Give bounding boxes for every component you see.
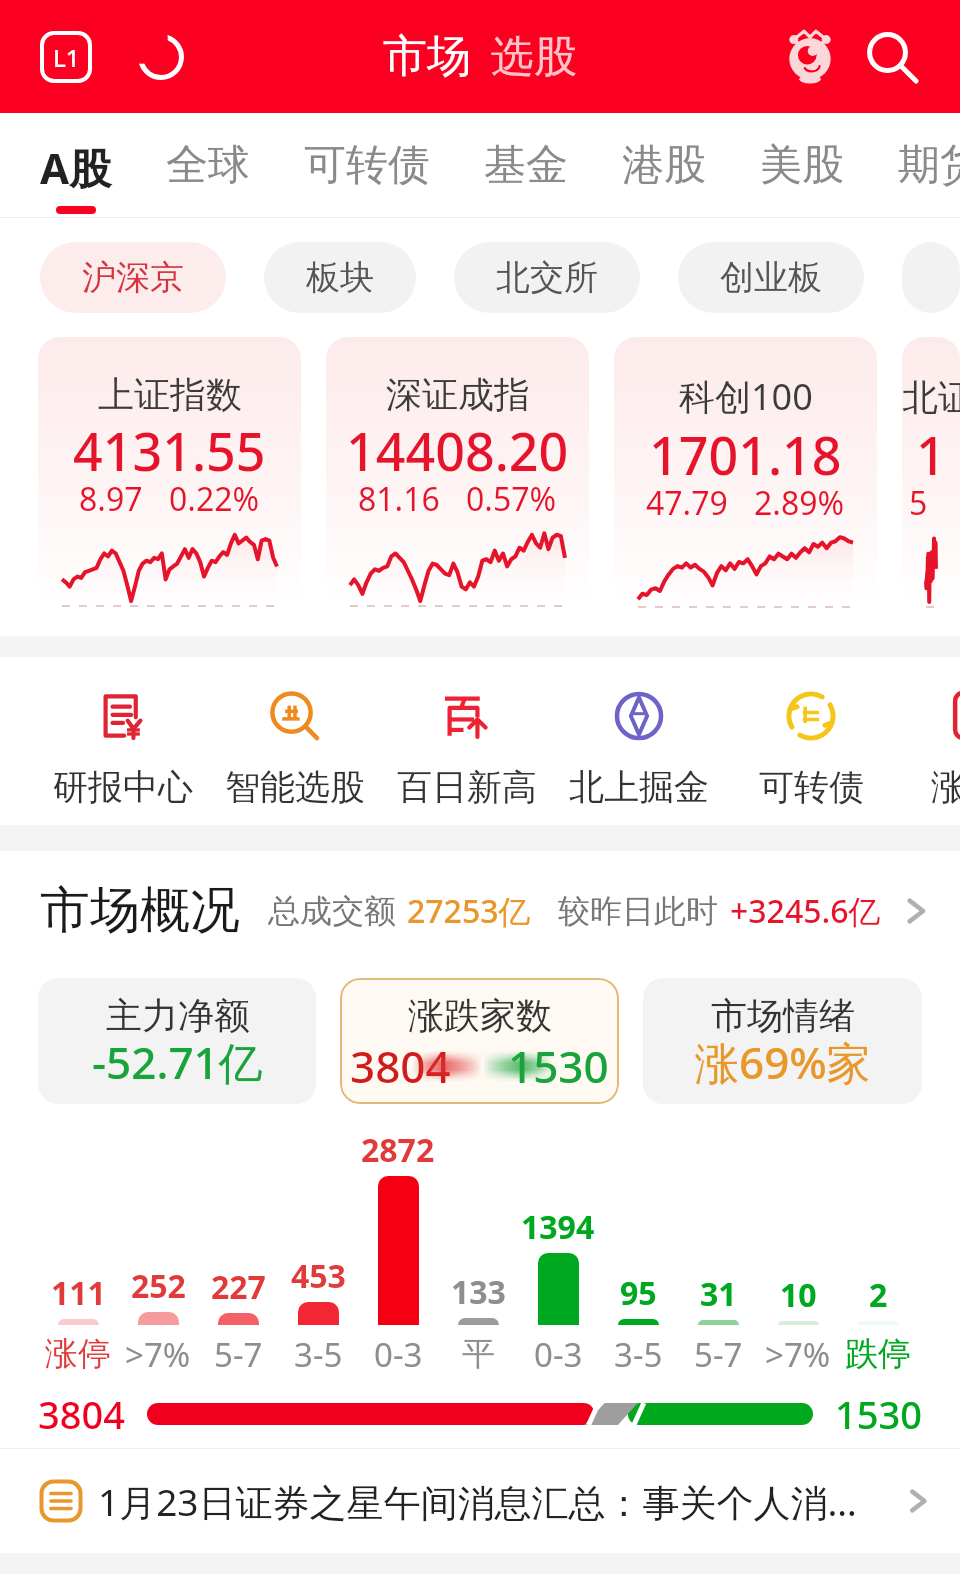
button[interactable]: 北上掘金 [553,657,725,809]
button[interactable]: 市场情绪 [643,978,922,1104]
button[interactable]: Search [854,19,930,95]
staticText: 5-7 [214,1332,263,1377]
button[interactable]: 港股 [622,113,706,218]
staticText: 31 [700,1272,737,1316]
staticText: 95 [620,1271,657,1315]
staticText: 1701.18 [649,419,842,490]
staticText: 2.89% [754,481,845,525]
button[interactable]: 111 [38,1112,118,1380]
staticText: 252 [131,1264,186,1308]
staticText: 板块 [306,256,374,299]
button[interactable]: 期货 [898,113,960,218]
staticText: 百日新高 [397,765,537,809]
button[interactable]: 研报中心 [37,657,209,809]
staticText: 0.57% [466,477,557,521]
staticText: 4131.55 [73,415,266,486]
staticText: 研报中心 [53,765,193,809]
button[interactable]: 10 [758,1112,838,1380]
staticText: 10 [780,1273,817,1317]
staticText: 美股 [760,139,844,192]
button[interactable]: 市场 [383,29,471,84]
staticText: 北上掘金 [569,765,709,809]
staticText: 1月23日证券之星午间消息汇总：事关个人消… [98,1476,857,1527]
button[interactable]: 智能选股 [209,657,381,809]
staticText: 市场 [383,29,471,84]
button[interactable]: L1 quote level [32,23,100,91]
button[interactable]: 沪深京 [40,242,226,313]
staticText: 0-3 [374,1332,423,1377]
staticText: 可转债 [759,765,864,809]
staticText: 3-5 [294,1332,343,1377]
button[interactable]: 选股 [491,30,577,84]
staticText: 8.97 [79,477,143,521]
button[interactable]: 全球 [166,113,250,218]
button[interactable]: 1月23日证券之星午间消息汇总：事关个人消… [0,1449,960,1553]
button[interactable]: 科创100 [614,337,877,608]
button[interactable]: 涨跌家数 [340,978,619,1104]
staticText: 主力净额 [106,993,250,1038]
staticText: 上证指数 [98,372,242,417]
button[interactable]: 深证成指 [326,337,589,608]
button[interactable]: A股 [40,113,112,218]
staticText: 可转债 [304,139,430,192]
button[interactable]: 板块 [264,242,416,313]
button[interactable]: 453 [278,1112,358,1380]
button[interactable]: 科创板 [902,242,960,313]
staticText: 市场概况 [40,879,240,942]
staticText: 智能选股 [225,765,365,809]
staticText: 创业板 [720,256,822,299]
staticText: 2 [869,1273,888,1317]
staticText: 27253亿 [407,889,531,933]
button[interactable]: 133 [438,1112,518,1380]
button[interactable]: 252 [118,1112,198,1380]
button[interactable]: 227 [198,1112,278,1380]
staticText: 2872 [361,1128,435,1172]
staticText: 14408.20 [346,415,569,486]
staticText: 47.79 [646,481,728,525]
button[interactable]: 可转债 [304,113,430,218]
button[interactable]: 北交所 [454,242,640,313]
button[interactable]: 市场概况 [0,851,960,970]
button[interactable]: Night mode [127,23,195,91]
staticText: 1394 [521,1205,595,1249]
button[interactable]: 2872 [358,1112,438,1380]
staticText: A股 [40,139,112,196]
button[interactable]: 涨停板 [897,657,960,809]
staticText: 涨停 [45,1333,111,1375]
staticText: -52.71亿 [92,1032,263,1092]
staticText: 平 [462,1333,495,1375]
button[interactable]: 95 [598,1112,678,1380]
button[interactable]: 2 [838,1112,918,1380]
button[interactable]: 可转债 [725,657,897,809]
staticText: 1530 [835,1388,922,1440]
button[interactable]: 上证指数 [38,337,301,608]
button[interactable]: 31 [678,1112,758,1380]
staticText: >7% [765,1332,831,1377]
staticText: 3-5 [614,1332,663,1377]
button[interactable]: 基金 [484,113,568,218]
button[interactable]: AI assistant [772,19,848,95]
staticText: 选股 [491,30,577,84]
staticText: 北交所 [496,256,598,299]
staticText: 453 [291,1254,346,1298]
staticText: 总成交额 [268,891,396,931]
staticText: 3804 [350,1036,451,1088]
staticText: 227 [211,1265,266,1309]
staticText: 0-3 [534,1332,583,1377]
staticText: 3804 [38,1388,125,1440]
staticText: 深证成指 [386,372,530,417]
staticText: 科创100 [679,372,813,421]
staticText: 1530 [508,1036,609,1088]
button[interactable]: 美股 [760,113,844,218]
button[interactable]: 主力净额 [38,978,316,1104]
button[interactable]: 北证50 [902,337,960,608]
button[interactable]: 1394 [518,1112,598,1380]
button[interactable]: 百日新高 [381,657,553,809]
staticText: 5-7 [694,1332,743,1377]
staticText: 111 [51,1271,106,1315]
staticText: 0.22% [169,477,260,521]
button[interactable]: 创业板 [678,242,864,313]
staticText: 基金 [484,139,568,192]
staticText: 5 [909,481,928,525]
staticText: 全球 [166,139,250,192]
